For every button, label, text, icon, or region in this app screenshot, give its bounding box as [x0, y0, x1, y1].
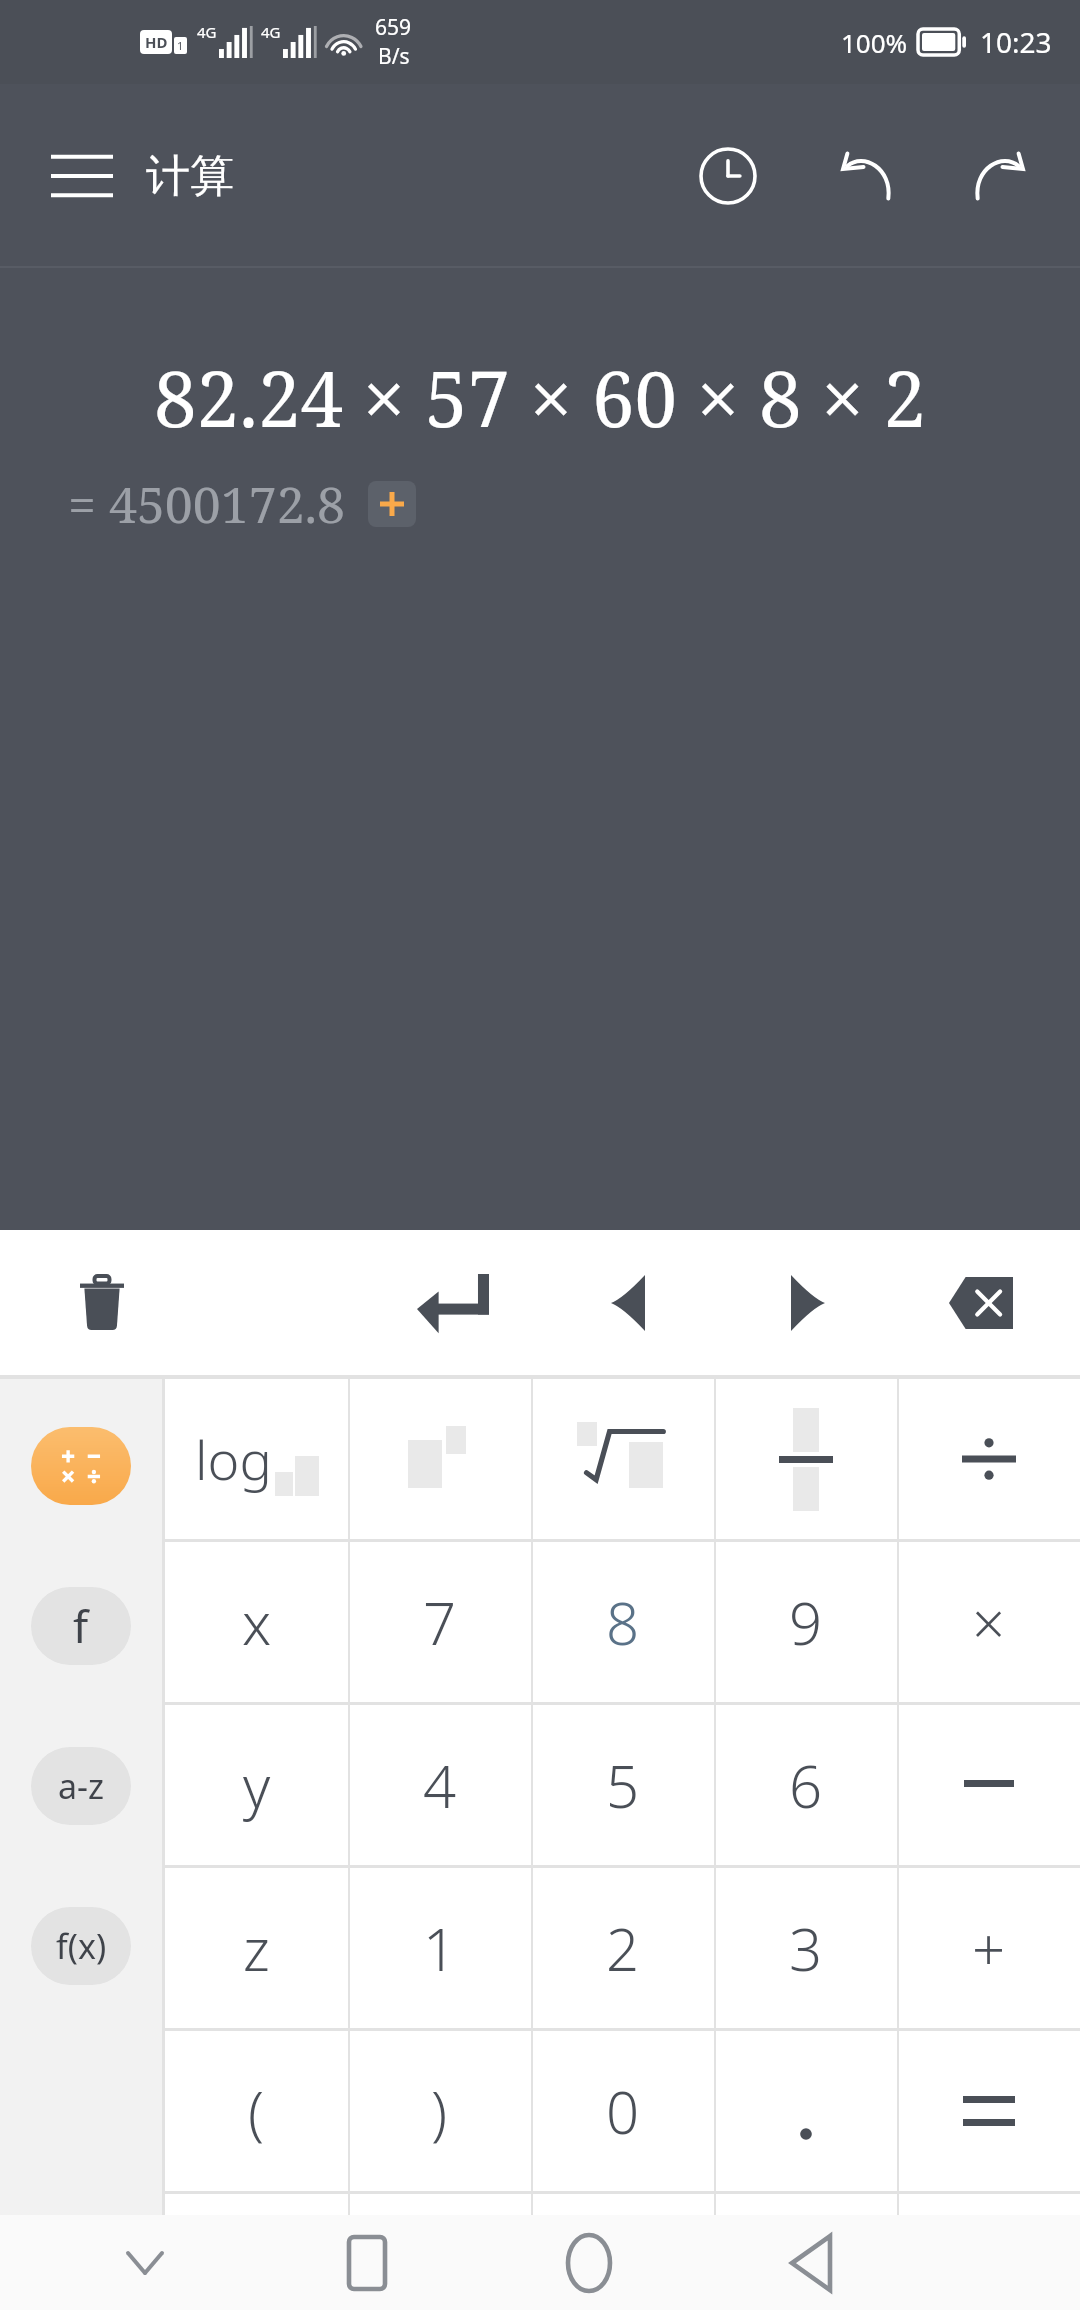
staticText: 3 [789, 1909, 823, 1988]
button[interactable]: Recent apps [312, 2215, 422, 2310]
staticText: 2 [606, 1909, 640, 1988]
button[interactable] [897, 1379, 1080, 1539]
button[interactable]: Move left [578, 1253, 678, 1353]
staticText: × [972, 1583, 1006, 1662]
button[interactable]: 9 [714, 1542, 897, 1702]
staticText: x [242, 1583, 272, 1662]
button[interactable]: ( [165, 2031, 348, 2191]
button[interactable]: Home [534, 2215, 644, 2310]
button[interactable]: Redo [956, 132, 1044, 220]
button[interactable]: f(x) [31, 1907, 131, 1985]
staticText: + [972, 1909, 1006, 1988]
staticText: ( [248, 2072, 265, 2151]
button[interactable] [714, 1379, 897, 1539]
button[interactable] [531, 1379, 714, 1539]
staticText: 6 [789, 1746, 823, 1825]
button[interactable]: ) [348, 2031, 531, 2191]
button[interactable] [897, 1705, 1080, 1865]
staticText: f [73, 1596, 89, 1656]
staticText: z [243, 1909, 270, 1988]
staticText: 4 [423, 1746, 457, 1825]
button[interactable]: Basic operations [31, 1427, 131, 1505]
button[interactable]: + [897, 1868, 1080, 2028]
button[interactable]: 7 [348, 1542, 531, 1702]
staticText: 计算 [146, 149, 234, 204]
button[interactable] [714, 2031, 897, 2191]
staticText: 7 [423, 1583, 457, 1662]
button[interactable]: log [165, 2194, 348, 2300]
staticText: 1 [177, 38, 184, 53]
staticText: 4G [197, 22, 217, 42]
staticText: 10:23 [980, 23, 1052, 61]
staticText: 8 [606, 1583, 640, 1662]
button[interactable]: f [31, 1587, 131, 1665]
button[interactable]: × [897, 1542, 1080, 1702]
button[interactable]: 5 [531, 1705, 714, 1865]
button[interactable]: 4 [348, 1705, 531, 1865]
button[interactable]: y [165, 1705, 348, 1865]
button[interactable]: 8 [531, 1542, 714, 1702]
staticText: HD [145, 32, 168, 52]
button[interactable] [348, 1379, 531, 1539]
staticText: 0 [606, 2072, 640, 2151]
staticText: 1 [423, 1909, 457, 1988]
staticText: ) [431, 2072, 448, 2151]
button[interactable]: Undo [822, 132, 910, 220]
button[interactable]: Move right [758, 1253, 858, 1353]
staticText: log [195, 1422, 272, 1496]
button[interactable] [714, 2194, 897, 2300]
button[interactable]: Add to memory [368, 481, 416, 527]
button[interactable]: ln [531, 2194, 714, 2300]
staticText: 9 [789, 1583, 823, 1662]
staticText: 100% [841, 25, 908, 60]
staticText: y [243, 1746, 271, 1825]
button[interactable]: log [165, 1379, 348, 1539]
button[interactable]: Clear [52, 1253, 152, 1353]
staticText: 4G [261, 22, 281, 42]
button[interactable]: Enter [398, 1248, 508, 1358]
button[interactable]: x [165, 1542, 348, 1702]
staticText: 82.24 × 57 × 60 × 8 × 2 [0, 346, 1080, 450]
staticText: 5 [606, 1746, 640, 1825]
button[interactable]: Back [756, 2215, 866, 2310]
button[interactable]: 0 [531, 2031, 714, 2191]
button[interactable]: History [684, 132, 772, 220]
button[interactable]: 2 [531, 1868, 714, 2028]
staticText: 659 [375, 13, 412, 42]
staticText: B/s [378, 42, 410, 71]
staticText: log [376, 2213, 448, 2281]
button[interactable] [897, 2031, 1080, 2191]
button[interactable]: log [348, 2194, 531, 2300]
staticText: = 4500172.8 [68, 470, 346, 538]
button[interactable]: a-z [31, 1747, 131, 1825]
staticText: ln [587, 2212, 631, 2283]
button[interactable]: 1 [348, 1868, 531, 2028]
button[interactable]: Hide keyboard [90, 2215, 200, 2310]
button[interactable]: 3 [714, 1868, 897, 2028]
button[interactable]: z [165, 1868, 348, 2028]
button[interactable]: Backspace [926, 1248, 1036, 1358]
button[interactable]: 6 [714, 1705, 897, 1865]
staticText: a-z [58, 1763, 105, 1809]
button[interactable]: Menu [44, 138, 120, 214]
staticText: f(x) [56, 1923, 107, 1969]
